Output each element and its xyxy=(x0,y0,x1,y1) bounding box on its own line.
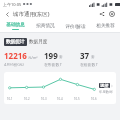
staticText: 招商情况 xyxy=(36,23,55,29)
staticText: 10-4 xyxy=(57,97,63,101)
staticText: 199 xyxy=(44,50,58,61)
staticText: 10-6 xyxy=(91,97,97,101)
button[interactable]: 基础信息 xyxy=(0,20,30,32)
button[interactable]: Settings xyxy=(107,9,117,19)
staticText: 评价/解读 xyxy=(65,23,86,29)
button[interactable]: Back xyxy=(3,10,12,19)
button[interactable]: 199 xyxy=(44,50,80,67)
staticText: 套 xyxy=(91,55,95,60)
button[interactable]: 12216 xyxy=(4,50,44,67)
staticText: 10-2 xyxy=(24,97,30,101)
button[interactable]: 相关推荐 xyxy=(90,20,120,32)
button[interactable]: 37 xyxy=(80,50,116,67)
staticText: 12216 xyxy=(4,50,27,61)
staticText: 数据统计 xyxy=(6,39,25,45)
staticText: 在租套数↑ xyxy=(80,62,99,67)
staticText: 观望 xyxy=(100,83,109,88)
staticText: 基础信息 xyxy=(6,22,25,28)
staticText: 4月均价(元) xyxy=(4,62,24,67)
staticText: 元/m² xyxy=(28,55,38,60)
button[interactable]: Share xyxy=(97,9,107,19)
staticText: 相关推荐 xyxy=(96,23,115,29)
staticText: 10-1 xyxy=(7,97,13,101)
staticText: 上午10:05 xyxy=(3,2,22,7)
button[interactable]: 招商情况 xyxy=(30,20,60,32)
staticText: 37 xyxy=(80,50,90,61)
staticText: 城市通用(东区) xyxy=(13,10,50,18)
button[interactable]: 评价/解读 xyxy=(60,20,90,32)
staticText: 年度数据 xyxy=(99,90,113,94)
staticText: 10-3 xyxy=(41,97,47,101)
button[interactable]: 10-1 xyxy=(4,72,116,104)
staticText: 10-5 xyxy=(74,97,80,101)
staticText: 在售套数↑ xyxy=(44,62,63,67)
staticText: 数据月度 xyxy=(29,39,48,45)
staticText: 套 xyxy=(59,55,63,60)
